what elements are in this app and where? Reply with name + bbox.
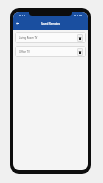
staticText: Office TV [19, 50, 30, 53]
button[interactable]: Living Room TV [15, 32, 86, 43]
staticText: Living Room TV [19, 36, 38, 39]
button[interactable]: Back [14, 19, 21, 27]
button[interactable]: Delete [77, 48, 83, 56]
staticText: Saved Remotes [41, 22, 60, 26]
button[interactable]: Office TV [15, 46, 86, 57]
button[interactable]: Delete [77, 34, 83, 42]
